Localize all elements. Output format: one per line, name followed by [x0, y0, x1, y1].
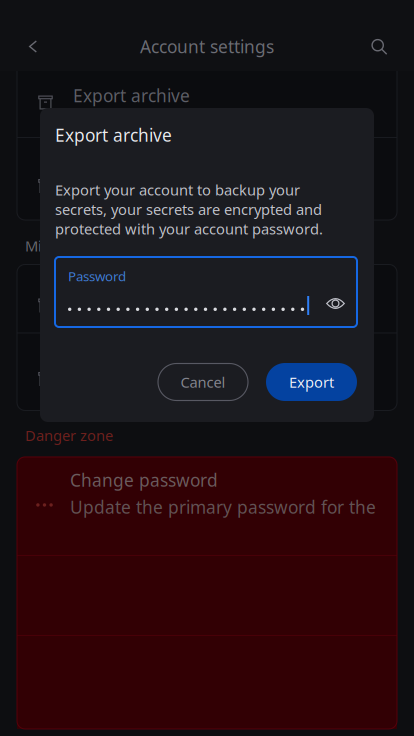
staticText: Upload archive	[73, 167, 196, 190]
staticText: Password	[68, 267, 126, 285]
staticText: Export archive	[73, 84, 190, 107]
staticText: Danger zone	[25, 425, 113, 445]
staticText: Export your account to backup your secre…	[55, 180, 323, 238]
staticText: Export archive	[55, 123, 172, 146]
button[interactable]: Export	[266, 363, 357, 401]
staticText: Transfer account	[73, 360, 210, 383]
button[interactable]: Transfer account	[17, 333, 397, 410]
staticText: Change password	[70, 468, 218, 491]
button[interactable]: Back	[0, 24, 66, 69]
button[interactable]: Change email	[17, 264, 397, 332]
staticText: Update the primary password for the	[70, 495, 376, 518]
button[interactable]: Change password	[17, 457, 397, 555]
staticText: Cancel	[180, 372, 225, 392]
button[interactable]: Search	[344, 24, 414, 69]
staticText: Change email	[73, 287, 186, 310]
button[interactable]: Cancel	[158, 363, 248, 400]
staticText: Export	[289, 372, 334, 392]
staticText: Migration	[25, 236, 92, 255]
staticText: Account settings	[140, 35, 274, 58]
button[interactable]: Export archive	[17, 62, 397, 137]
button[interactable]: Upload archive	[17, 138, 397, 220]
